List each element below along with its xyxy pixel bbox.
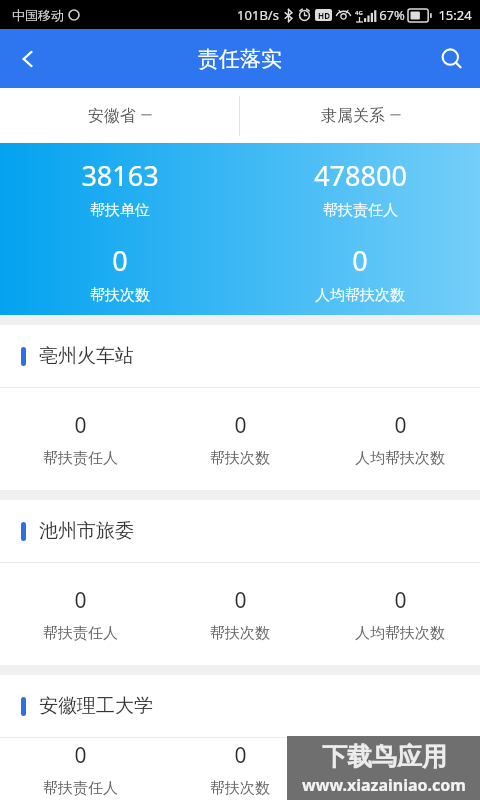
staticText: 帮扶次数 [90,286,150,305]
staticText: 0 [394,586,407,615]
staticText: 中国移动 [12,7,64,23]
staticText: 责任落实 [198,46,282,72]
staticText: 帮扶次数 [210,624,270,643]
button[interactable]: Search [424,31,480,87]
staticText: 0 [74,411,87,440]
staticText: 0 [352,242,368,279]
staticText: 0 [234,741,247,770]
staticText: 隶属关系 [321,106,385,126]
button[interactable]: 安徽理工大学 [0,675,480,800]
button[interactable]: 池州市旅委 [0,500,480,665]
staticText: 0 [234,586,247,615]
staticText: 15:24 [438,6,472,24]
button[interactable]: 安徽省 [0,88,239,143]
staticText: 0 [234,411,247,440]
staticText: 4G [355,9,363,17]
button[interactable]: Back [0,31,56,87]
button[interactable]: 隶属关系 [240,88,480,143]
staticText: 帮扶责任人 [43,779,118,798]
staticText: 101B/s [237,6,279,24]
staticText: 0 [394,411,407,440]
staticText: 0 [112,242,128,279]
staticText: 安徽省 [88,106,136,126]
staticText: 人均帮扶次数 [315,286,405,305]
staticText: 帮扶次数 [210,779,270,798]
staticText: HD [318,10,330,21]
staticText: 帮扶责任人 [43,624,118,643]
button[interactable]: 亳州火车站 [0,325,480,490]
staticText: 478800 [314,157,407,194]
staticText: www.xiazainiao.com [302,774,466,796]
staticText: 0 [394,741,407,770]
staticText: 安徽理工大学 [39,694,153,718]
staticText: 67% [379,6,405,24]
staticText: 38163 [81,157,159,194]
staticText: 人均帮扶次数 [355,449,445,468]
staticText: 0 [74,586,87,615]
staticText: 帮扶单位 [90,201,150,220]
staticText: 亳州火车站 [39,344,134,368]
staticText: 人均帮扶次数 [355,779,445,798]
staticText: 帮扶责任人 [323,201,398,220]
staticText: 帮扶责任人 [43,449,118,468]
staticText: 池州市旅委 [39,519,134,543]
staticText: 下载鸟应用 [322,741,447,772]
staticText: 帮扶次数 [210,449,270,468]
staticText: 0 [74,741,87,770]
staticText: 人均帮扶次数 [355,624,445,643]
